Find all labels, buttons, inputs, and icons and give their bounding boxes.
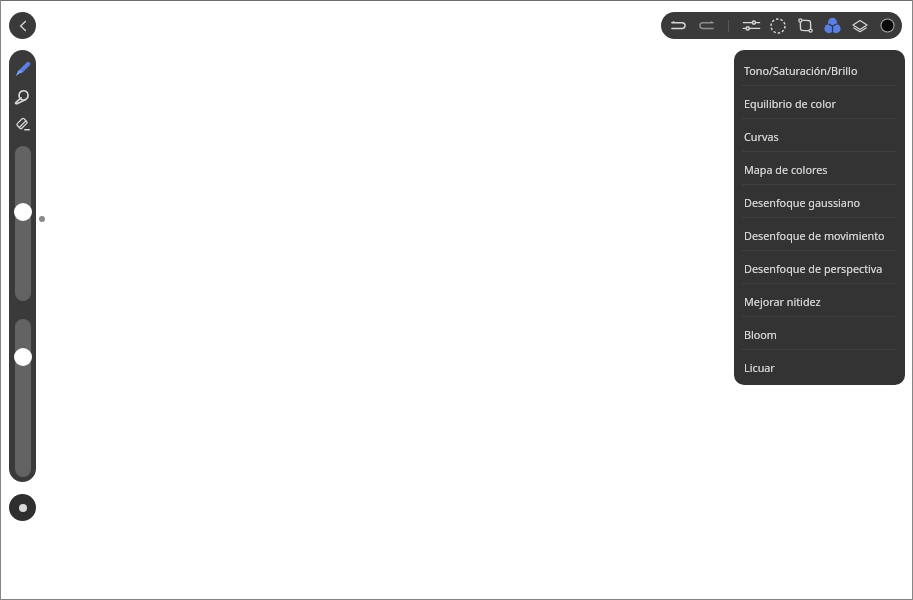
- staticText: Desenfoque gaussiano: [744, 195, 861, 210]
- button[interactable]: Slider: [15, 319, 31, 477]
- button[interactable]: Mejorar nitidez: [734, 284, 905, 317]
- button[interactable]: Brush: [9, 56, 36, 83]
- button[interactable]: Desenfoque gaussiano: [734, 185, 905, 218]
- button[interactable]: Adjustments: [738, 12, 765, 39]
- staticText: Mejorar nitidez: [744, 294, 821, 309]
- staticText: Desenfoque de perspectiva: [744, 261, 883, 276]
- button[interactable]: Color mixer: [819, 12, 846, 39]
- button[interactable]: Tono/Saturación/Brillo: [734, 53, 905, 86]
- staticText: Licuar: [744, 360, 775, 375]
- button[interactable]: Select: [764, 12, 791, 39]
- button[interactable]: Color swatch: [874, 12, 901, 39]
- button[interactable]: Equilibrio de color: [734, 86, 905, 119]
- button[interactable]: Licuar: [734, 350, 905, 383]
- button[interactable]: Bloom: [734, 317, 905, 350]
- button[interactable]: Smudge: [9, 83, 36, 110]
- button[interactable]: Back: [9, 12, 36, 39]
- button[interactable]: Desenfoque de movimiento: [734, 218, 905, 251]
- button[interactable]: Crop: [792, 12, 819, 39]
- button[interactable]: Redo: [693, 12, 720, 39]
- button[interactable]: Undo: [665, 12, 692, 39]
- staticText: Bloom: [744, 327, 777, 342]
- staticText: Equilibrio de color: [744, 96, 836, 111]
- staticText: Tono/Saturación/Brillo: [744, 63, 858, 78]
- staticText: Curvas: [744, 129, 779, 144]
- button[interactable]: Mapa de colores: [734, 152, 905, 185]
- staticText: Desenfoque de movimiento: [744, 228, 885, 243]
- button[interactable]: Eraser: [9, 110, 36, 137]
- button[interactable]: Desenfoque de perspectiva: [734, 251, 905, 284]
- button[interactable]: Slider: [15, 146, 31, 301]
- button[interactable]: Curvas: [734, 119, 905, 152]
- button[interactable]: Color picker: [9, 494, 36, 521]
- staticText: Mapa de colores: [744, 162, 828, 177]
- button[interactable]: Layers: [846, 12, 873, 39]
